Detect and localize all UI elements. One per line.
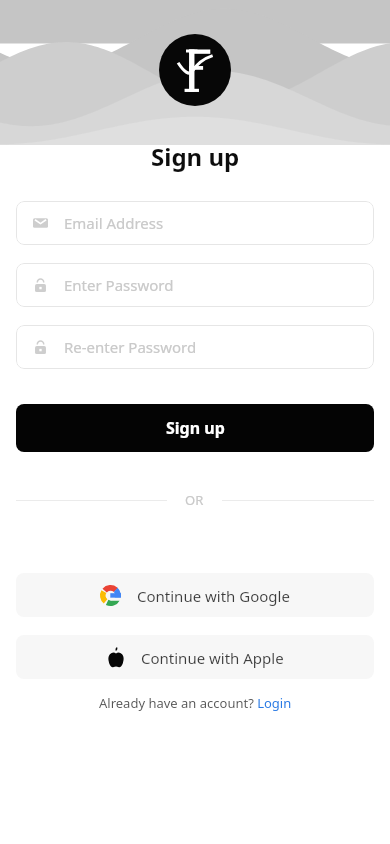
staticText: OR bbox=[185, 491, 204, 509]
staticText: Already have an account? Login bbox=[99, 694, 292, 712]
button[interactable]: Re-enter Password bbox=[16, 325, 374, 369]
staticText: Sign up bbox=[166, 417, 225, 439]
staticText: Continue with Google bbox=[137, 586, 290, 606]
staticText: Enter Password bbox=[64, 275, 174, 295]
button[interactable]: Sign up bbox=[16, 404, 374, 452]
staticText: Email Address bbox=[64, 213, 164, 233]
button[interactable]: Continue with Apple bbox=[16, 635, 374, 679]
staticText: Continue with Apple bbox=[141, 648, 284, 668]
button[interactable]: Enter Password bbox=[16, 263, 374, 307]
button[interactable]: Continue with Google bbox=[16, 573, 374, 617]
button[interactable]: Already have an account? Login bbox=[95, 690, 296, 716]
staticText: Sign up bbox=[151, 140, 240, 173]
button[interactable]: Email Address bbox=[16, 201, 374, 245]
other: App logo bbox=[159, 34, 231, 106]
staticText: Re-enter Password bbox=[64, 337, 197, 357]
